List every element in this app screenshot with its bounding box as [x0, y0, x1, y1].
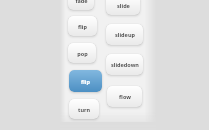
staticText: fade [75, 0, 88, 4]
button[interactable]: flow [107, 86, 142, 107]
staticText: slide [117, 2, 130, 9]
button[interactable]: slideup [106, 24, 143, 45]
staticText: turn [78, 106, 90, 113]
button[interactable]: flip [69, 70, 102, 92]
staticText: slideup [115, 31, 135, 38]
button[interactable]: flip [68, 16, 97, 36]
button[interactable]: fade [68, 0, 94, 10]
staticText: slidedown [111, 61, 139, 68]
staticText: pop [77, 50, 88, 57]
staticText: flip [78, 23, 87, 30]
button[interactable]: slide [106, 0, 140, 15]
staticText: flip [81, 78, 90, 85]
button[interactable]: pop [68, 43, 96, 63]
button[interactable]: turn [69, 99, 99, 119]
staticText: flow [119, 93, 131, 100]
button[interactable]: slidedown [106, 54, 143, 75]
